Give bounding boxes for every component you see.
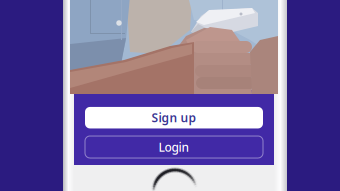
staticText: Login — [158, 139, 189, 155]
staticText: Sign up — [151, 110, 196, 126]
button[interactable]: Login — [85, 136, 263, 158]
button[interactable]: Sign up — [85, 107, 263, 128]
